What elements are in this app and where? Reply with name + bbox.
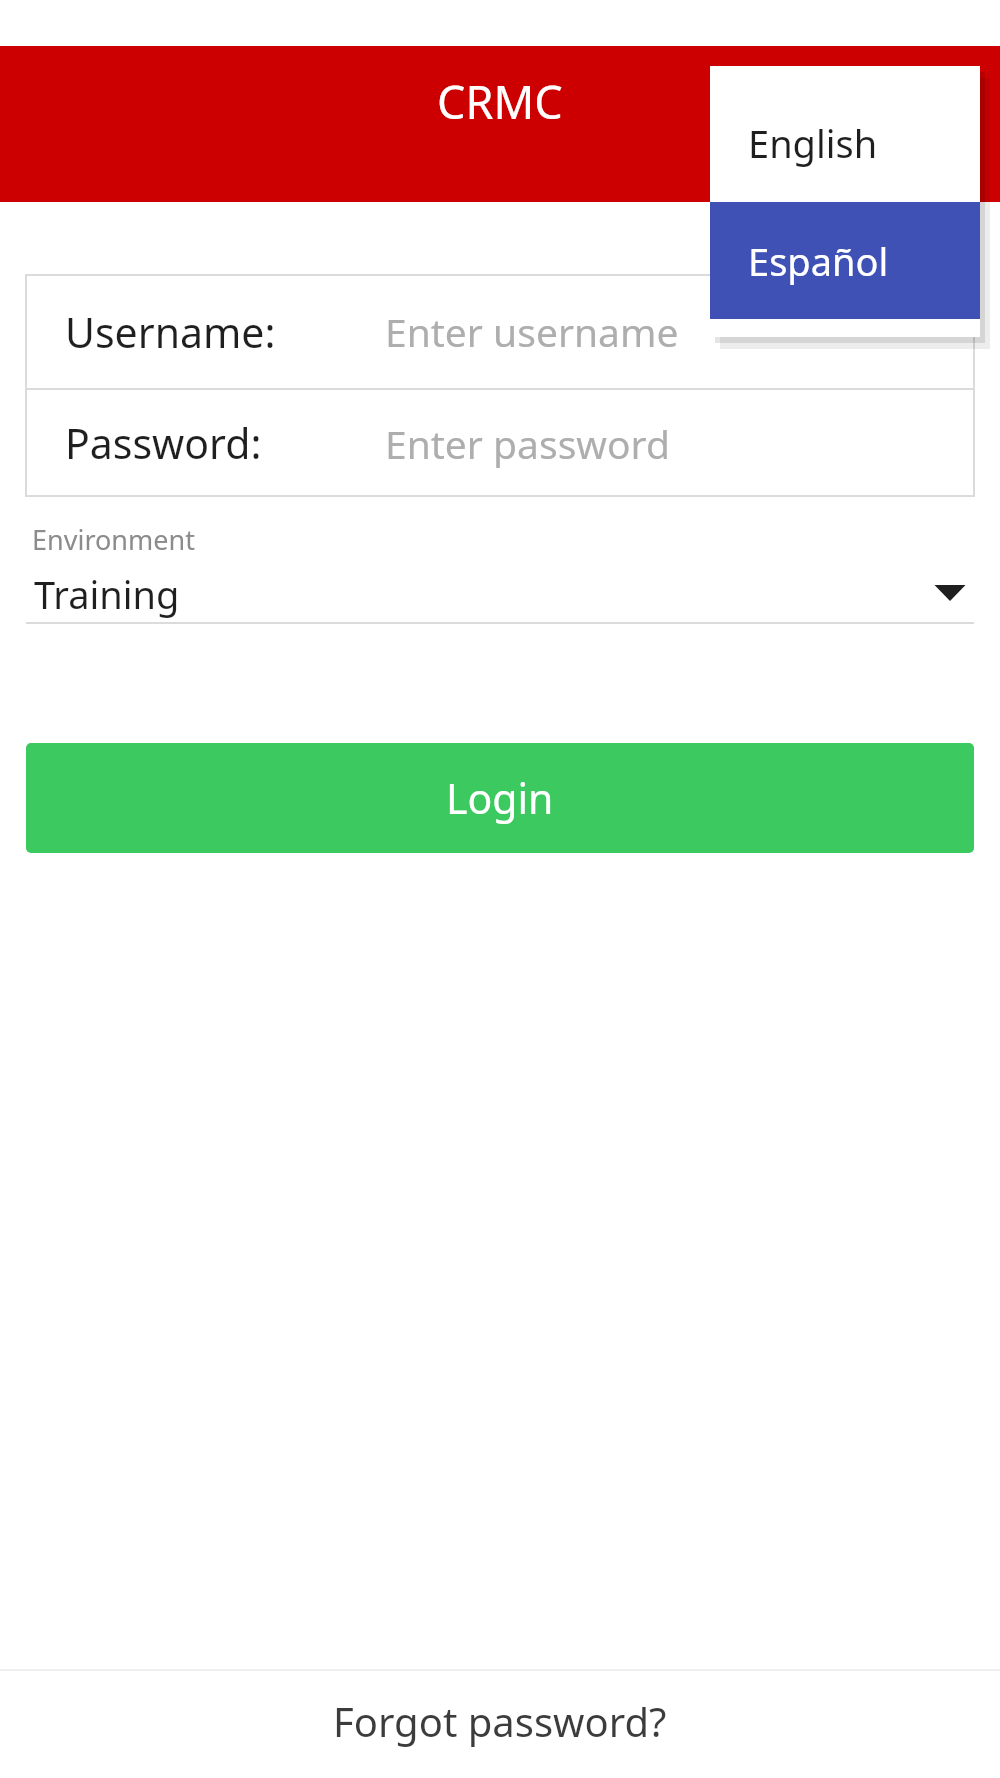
- button[interactable]: English: [710, 84, 980, 202]
- staticText: Enter password: [385, 417, 670, 470]
- button[interactable]: Forgot password?: [0, 1671, 1000, 1778]
- staticText: Password:: [65, 415, 262, 471]
- button[interactable]: Login: [26, 743, 974, 853]
- staticText: English: [748, 117, 878, 169]
- staticText: Training: [34, 568, 180, 620]
- button[interactable]: Español: [710, 202, 980, 319]
- button[interactable]: Training: [26, 570, 974, 624]
- button[interactable]: Password:: [26, 390, 974, 496]
- staticText: Login: [446, 770, 554, 826]
- staticText: Forgot password?: [333, 1694, 667, 1748]
- staticText: Enter username: [385, 305, 679, 358]
- staticText: CRMC: [437, 71, 563, 132]
- button[interactable]: Username:: [26, 275, 974, 388]
- other: Open environment list: [928, 579, 972, 607]
- staticText: Environment: [32, 521, 195, 558]
- staticText: Username:: [65, 304, 276, 360]
- staticText: Español: [748, 235, 889, 287]
